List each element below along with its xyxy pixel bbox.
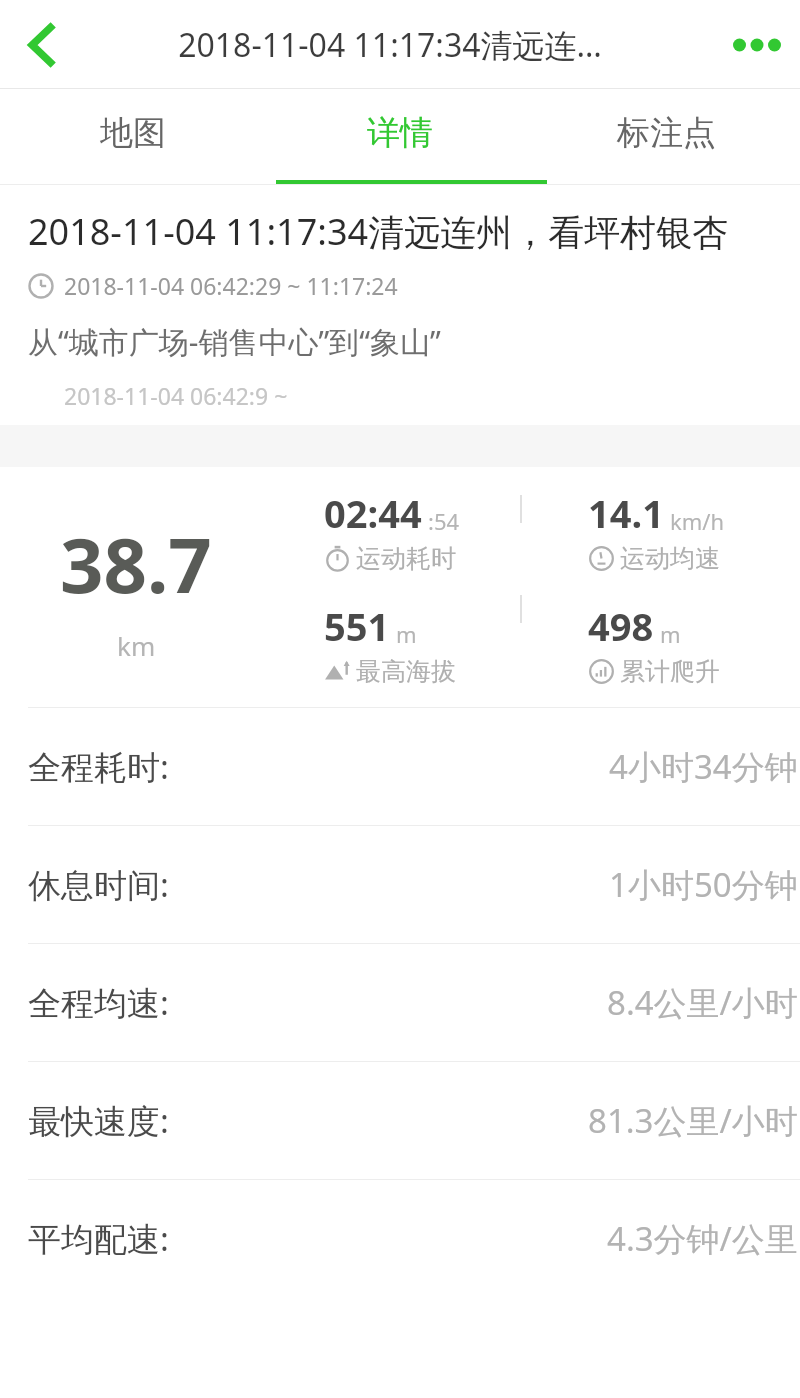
button[interactable]: Back xyxy=(0,0,86,89)
staticText: 2018-11-04 11:17:34清远连… xyxy=(178,23,602,67)
staticText: 最快速度: xyxy=(28,1098,169,1143)
staticText: km xyxy=(117,628,156,663)
staticText: 551 xyxy=(324,600,390,652)
button[interactable]: 平均配速: xyxy=(0,1180,800,1297)
staticText: m xyxy=(660,619,681,649)
staticText: 38.7 xyxy=(60,512,212,616)
button[interactable]: 全程均速: xyxy=(0,944,800,1061)
staticText: 从“城市广场-销售中心”到“象山” xyxy=(28,321,441,362)
staticText: 全程均速: xyxy=(28,980,169,1025)
staticText: 81.3公里/小时 xyxy=(588,1098,798,1143)
button[interactable]: 标注点 xyxy=(533,89,800,185)
staticText: km/h xyxy=(670,506,725,536)
staticText: 地图 xyxy=(100,112,166,154)
staticText: 1小时50分钟 xyxy=(609,862,798,907)
staticText: 4.3分钟/公里 xyxy=(607,1216,798,1261)
staticText: 4小时34分钟 xyxy=(609,744,798,789)
staticText: 14.1 xyxy=(588,487,664,539)
button[interactable]: 地图 xyxy=(0,89,266,185)
button[interactable]: 最快速度: xyxy=(0,1062,800,1179)
button[interactable]: 休息时间: xyxy=(0,826,800,943)
staticText: 运动耗时 xyxy=(356,543,456,574)
staticText: m xyxy=(396,619,417,649)
staticText: 标注点 xyxy=(617,112,716,154)
staticText: 平均配速: xyxy=(28,1216,169,1261)
staticText: 休息时间: xyxy=(28,862,169,907)
staticText: :54 xyxy=(428,506,460,536)
staticText: 498 xyxy=(588,600,654,652)
staticText: 全程耗时: xyxy=(28,744,169,789)
staticText: 02:44 xyxy=(324,487,422,539)
staticText: 2018-11-04 11:17:34清远连州，看坪村银杏 xyxy=(28,207,729,256)
staticText: 最高海拔 xyxy=(356,656,456,687)
staticText: 累计爬升 xyxy=(620,656,720,687)
button[interactable]: More options xyxy=(714,0,800,89)
staticText: 8.4公里/小时 xyxy=(607,980,798,1025)
staticText: 2018-11-04 06:42:9 ~ xyxy=(64,380,288,411)
button[interactable]: 详情 xyxy=(266,89,533,185)
button[interactable]: 全程耗时: xyxy=(0,708,800,825)
staticText: 2018-11-04 06:42:29 ~ 11:17:24 xyxy=(64,270,398,301)
staticText: 运动均速 xyxy=(620,543,720,574)
staticText: 详情 xyxy=(367,112,433,154)
